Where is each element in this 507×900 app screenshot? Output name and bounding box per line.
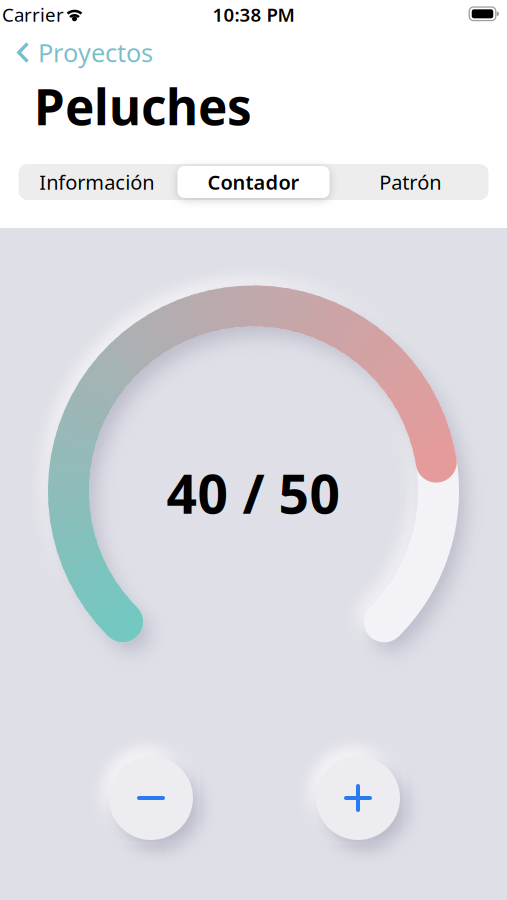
button[interactable]: Increment [316, 756, 400, 840]
button[interactable]: Información [19, 164, 175, 200]
staticText: 10:38 PM [212, 2, 294, 27]
button[interactable]: Decrement [109, 756, 193, 840]
staticText: Peluches [34, 73, 252, 139]
button[interactable]: Patrón [332, 164, 488, 200]
staticText: 40 / 50 [166, 458, 340, 528]
button[interactable]: Back [17, 36, 153, 69]
staticText: Contador [207, 169, 299, 195]
staticText: Carrier [2, 2, 64, 27]
staticText: Información [39, 169, 154, 195]
button[interactable]: Contador [175, 164, 331, 200]
staticText: Patrón [379, 169, 441, 195]
staticText: Proyectos [38, 36, 153, 69]
